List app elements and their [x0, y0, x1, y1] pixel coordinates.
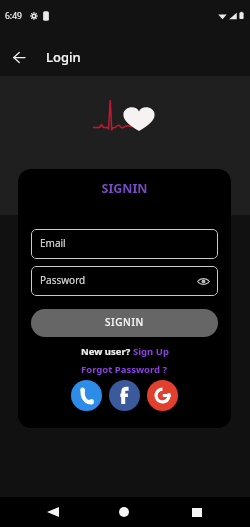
button[interactable]: Forgot Password ? [81, 363, 168, 376]
button[interactable]: Password [31, 266, 218, 296]
button[interactable]: Home [105, 498, 143, 526]
staticText: Login [46, 48, 81, 66]
staticText: Email [40, 236, 66, 250]
staticText: Sign Up [133, 345, 169, 358]
button[interactable]: Email [31, 229, 218, 259]
button[interactable]: SIGNIN [31, 309, 218, 337]
staticText: New user? [81, 345, 133, 358]
button[interactable]: Recents [143, 498, 250, 526]
button[interactable]: Sign in with phone [71, 380, 102, 411]
button[interactable]: Back [5, 43, 33, 71]
button[interactable]: Back [0, 498, 105, 526]
staticText: Forgot Password ? [81, 363, 168, 376]
button[interactable]: Sign Up [133, 345, 169, 358]
button[interactable]: Show password [196, 274, 211, 289]
staticText: 6:49 [5, 10, 22, 22]
button[interactable]: Sign in with Facebook [109, 380, 140, 411]
staticText: Password [40, 273, 86, 287]
button[interactable]: Sign in with Google [147, 380, 178, 411]
staticText: SIGNIN [105, 315, 144, 329]
staticText: SIGNIN [18, 180, 231, 197]
